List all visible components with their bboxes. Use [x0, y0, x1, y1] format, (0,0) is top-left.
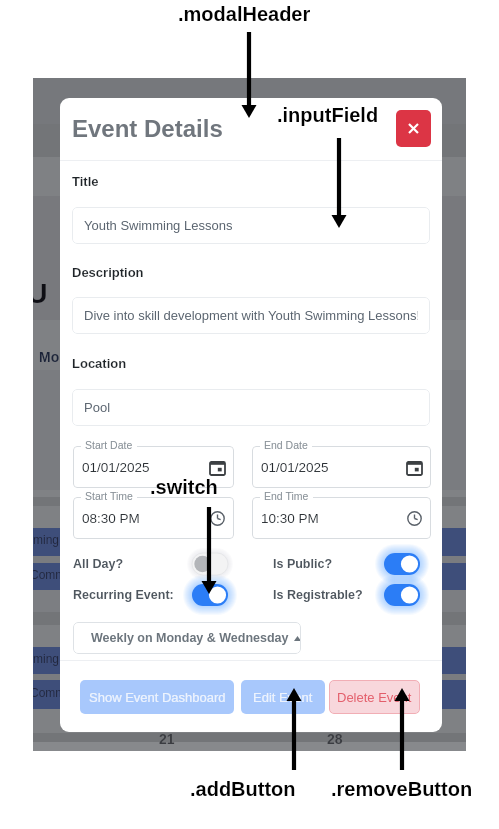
staticText: Event Details	[72, 115, 223, 142]
button[interactable]: Dive into skill development with Youth S…	[72, 297, 430, 334]
staticText: Youth Swimming Lessons	[84, 218, 233, 233]
staticText: 01/01/2025	[261, 460, 329, 475]
staticText: Pool	[84, 400, 111, 415]
button[interactable]: Pool	[72, 389, 430, 426]
staticText: Recurring Event:	[73, 588, 174, 602]
button[interactable]	[73, 446, 234, 488]
staticText: All Day?	[73, 557, 124, 571]
staticText: Description	[72, 265, 144, 280]
button[interactable]: Youth Swimming Lessons	[72, 207, 430, 244]
button[interactable]: Edit Event	[241, 680, 325, 714]
staticText: mming Swim	[33, 652, 92, 665]
staticText: Community	[33, 568, 91, 581]
button[interactable]: Recurring Event:	[73, 577, 236, 613]
staticText: .modalHeader	[178, 3, 311, 25]
staticText: .switch	[150, 476, 218, 498]
button[interactable]	[73, 497, 234, 539]
staticText: Weekly on Monday & Wednesday	[91, 631, 289, 645]
button[interactable]: Weekly on Monday & Wednesday	[73, 622, 301, 654]
staticText: .removeButton	[331, 778, 473, 800]
button[interactable]: Toggle	[184, 577, 236, 613]
staticText: MENU	[33, 278, 48, 309]
staticText: 08:30 PM	[82, 511, 140, 526]
button[interactable]: Delete Event	[329, 680, 420, 714]
button[interactable]: Is Registrable?	[273, 577, 428, 613]
staticText: 10:30 PM	[261, 511, 319, 526]
button[interactable]: Toggle	[376, 546, 428, 582]
staticText: mming Swim	[33, 533, 92, 546]
button[interactable]: Close dialog	[396, 110, 431, 147]
button[interactable]: Is Public?	[273, 546, 428, 582]
button[interactable]: All Day?	[73, 546, 236, 582]
staticText: Title	[72, 174, 99, 189]
staticText: Start Date	[85, 439, 133, 451]
staticText: Dive into skill development with Youth S…	[84, 308, 418, 323]
staticText: Location	[72, 356, 127, 371]
button[interactable]	[252, 497, 431, 539]
button[interactable]	[252, 446, 431, 488]
button[interactable]: Toggle	[376, 577, 428, 613]
button[interactable]: Toggle	[184, 546, 236, 582]
staticText: Is Registrable?	[273, 588, 363, 602]
staticText: 01/01/2025	[82, 460, 150, 475]
staticText: Mon	[39, 349, 68, 365]
staticText: Community	[33, 686, 91, 699]
staticText: .inputField	[277, 104, 379, 126]
staticText: End Time	[264, 490, 309, 502]
staticText: Start Time	[85, 490, 133, 502]
staticText: Delete Event	[337, 690, 412, 705]
button[interactable]: Show Event Dashboard	[80, 680, 234, 714]
staticText: 21	[159, 731, 175, 747]
staticText: .addButton	[190, 778, 296, 800]
staticText: Show Event Dashboard	[89, 690, 226, 705]
staticText: End Date	[264, 439, 308, 451]
staticText: 28	[327, 731, 343, 747]
staticText: Edit Event	[253, 690, 313, 705]
staticText: Is Public?	[273, 557, 333, 571]
